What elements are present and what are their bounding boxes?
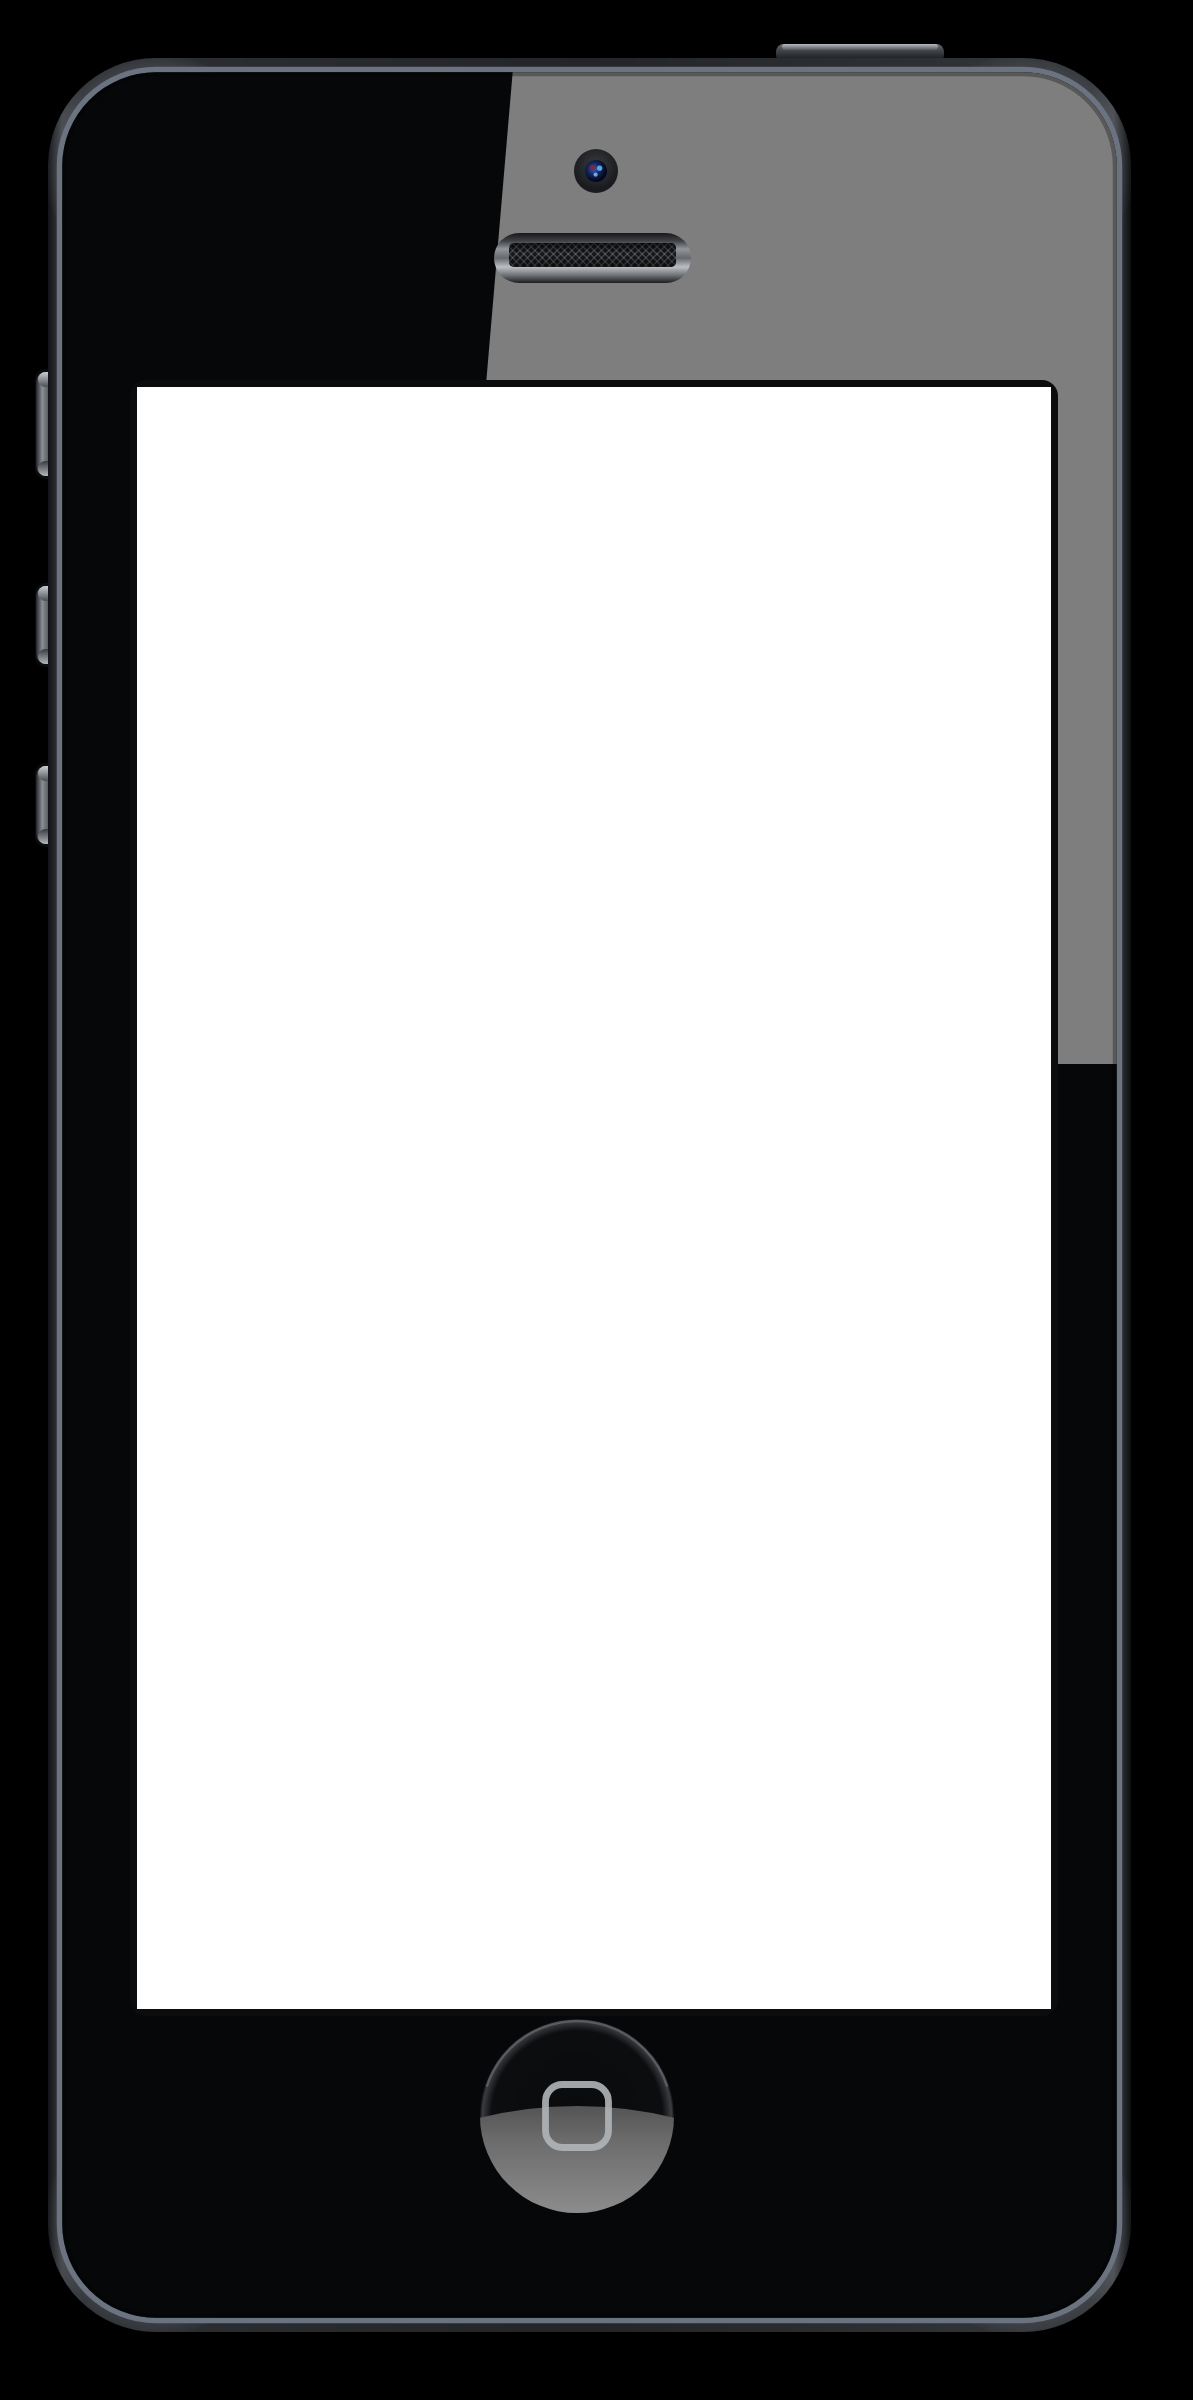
button[interactable]: Volume up	[34, 584, 64, 666]
button[interactable]: Ring silent switch	[34, 370, 64, 478]
button[interactable]: Power	[776, 40, 944, 68]
button[interactable]: Volume down	[34, 764, 64, 846]
button[interactable]: Home	[480, 2019, 674, 2213]
